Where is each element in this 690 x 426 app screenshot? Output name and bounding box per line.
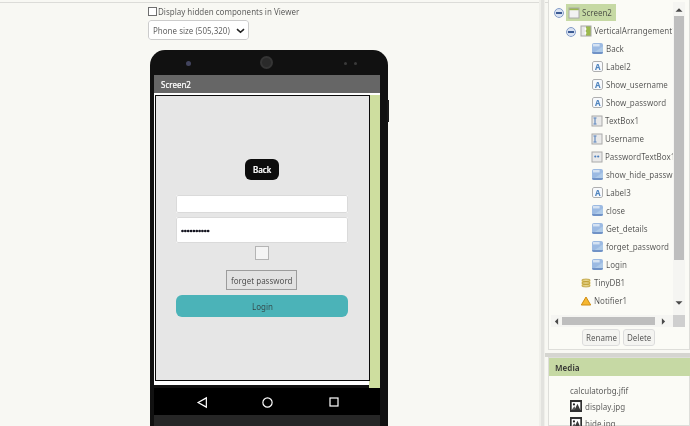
staticText: Screen2	[582, 7, 612, 18]
button[interactable]: Username	[592, 132, 644, 145]
button[interactable]: Back	[192, 392, 212, 412]
button[interactable]: Back	[592, 42, 624, 55]
staticText: Media	[555, 362, 580, 373]
button[interactable]: VerticalArrangement1	[581, 24, 677, 37]
staticText: PasswordTextBox1	[605, 151, 676, 162]
button[interactable]: Delete	[623, 329, 655, 346]
button[interactable]: Collapse	[554, 8, 564, 18]
staticText: close	[606, 205, 626, 216]
button[interactable]: Home	[257, 392, 277, 412]
button[interactable]: Scroll left	[552, 317, 561, 326]
button[interactable]	[148, 7, 157, 16]
staticText: A	[595, 97, 601, 108]
button[interactable]: TextBox1	[592, 114, 640, 127]
staticText: VerticalArrangement1	[594, 25, 677, 36]
staticText: Show_password	[606, 97, 667, 108]
button[interactable]: Get_details	[592, 222, 648, 235]
staticText: Screen2	[161, 79, 191, 90]
button[interactable]: display.jpg	[570, 400, 626, 412]
staticText: show_hide_passwo	[606, 169, 678, 180]
button[interactable]	[566, 4, 616, 21]
button[interactable]: TinyDB1	[581, 276, 626, 289]
staticText: Display hidden components in Viewer	[158, 6, 300, 17]
staticText: forget_password	[606, 241, 669, 252]
button[interactable]: Phone size (505,320)	[148, 20, 249, 40]
button[interactable]: PasswordTextBox1	[592, 150, 676, 163]
button[interactable]: forget_password	[592, 240, 669, 253]
button[interactable]: A	[592, 78, 668, 91]
staticText: display.jpg	[585, 401, 626, 412]
button[interactable]: Login	[592, 258, 627, 271]
staticText: Delete	[627, 332, 652, 343]
button[interactable]: calculatorbg.jfif	[570, 385, 629, 396]
staticText: Notifier1	[594, 295, 628, 306]
button[interactable]: Screen2	[569, 6, 612, 19]
button[interactable]: Back	[245, 159, 279, 180]
button[interactable]: Login	[176, 295, 348, 317]
staticText: Label2	[606, 61, 631, 72]
button[interactable]: A	[592, 96, 667, 109]
staticText: Username	[605, 133, 644, 144]
button[interactable]: A	[592, 60, 631, 73]
staticText: Login	[606, 259, 627, 270]
staticText: forget password	[231, 275, 293, 286]
button[interactable]	[255, 246, 269, 260]
button[interactable]: Rename	[582, 329, 620, 346]
button[interactable]: hide.jpg	[570, 417, 616, 426]
button[interactable]	[176, 195, 348, 213]
staticText: Rename	[586, 332, 617, 343]
button[interactable]: Recents	[324, 392, 344, 412]
staticText: TextBox1	[605, 115, 640, 126]
staticText: Get_details	[606, 223, 648, 234]
button[interactable]: Scroll right	[659, 317, 668, 326]
button[interactable]: forget password	[226, 270, 297, 290]
staticText: TinyDB1	[594, 277, 626, 288]
button[interactable]: close	[592, 204, 626, 217]
staticText: Back	[606, 43, 624, 54]
staticText: Login	[252, 301, 273, 312]
button[interactable]: A	[592, 186, 631, 199]
staticText: Label3	[606, 187, 631, 198]
staticText: hide.jpg	[585, 418, 616, 426]
staticText: Show_username	[606, 79, 668, 90]
staticText: Phone size (505,320)	[153, 25, 230, 36]
button[interactable]: Collapse	[566, 27, 576, 37]
button[interactable]: Notifier1	[581, 294, 628, 307]
button[interactable]: show_hide_passwo	[592, 168, 678, 181]
button[interactable]: Scroll down	[674, 298, 684, 308]
staticText: A	[595, 187, 601, 198]
button[interactable]	[176, 217, 348, 243]
button[interactable]: Scroll up	[674, 5, 684, 15]
staticText: Back	[253, 164, 272, 175]
staticText: A	[595, 79, 601, 90]
staticText: A	[595, 61, 601, 72]
